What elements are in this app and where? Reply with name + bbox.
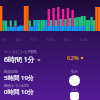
staticText: 0時間 10分 xyxy=(4,88,34,96)
staticText: 睡眠までの時間 xyxy=(4,84,29,88)
staticText: 6時間 1分 xyxy=(4,55,35,65)
staticText: 気分 xyxy=(71,70,78,74)
staticText: 6/16 xyxy=(47,37,55,42)
staticText: 6/6 xyxy=(16,37,22,42)
staticText: 睡眠時間 xyxy=(4,70,18,74)
staticText: 6/11 xyxy=(31,37,39,42)
staticText: 6/26 xyxy=(80,37,88,42)
staticText: 5時間 19分 xyxy=(4,74,34,82)
staticText: 6/21 xyxy=(64,37,72,42)
staticText: 62% xyxy=(67,54,79,62)
staticText: 6/1 xyxy=(2,37,8,42)
button[interactable]: メモ xyxy=(70,92,79,100)
button[interactable]: 気分 xyxy=(69,75,80,86)
staticText: ベッドにいた時間 xyxy=(4,49,37,54)
staticText: メモ xyxy=(71,88,79,92)
